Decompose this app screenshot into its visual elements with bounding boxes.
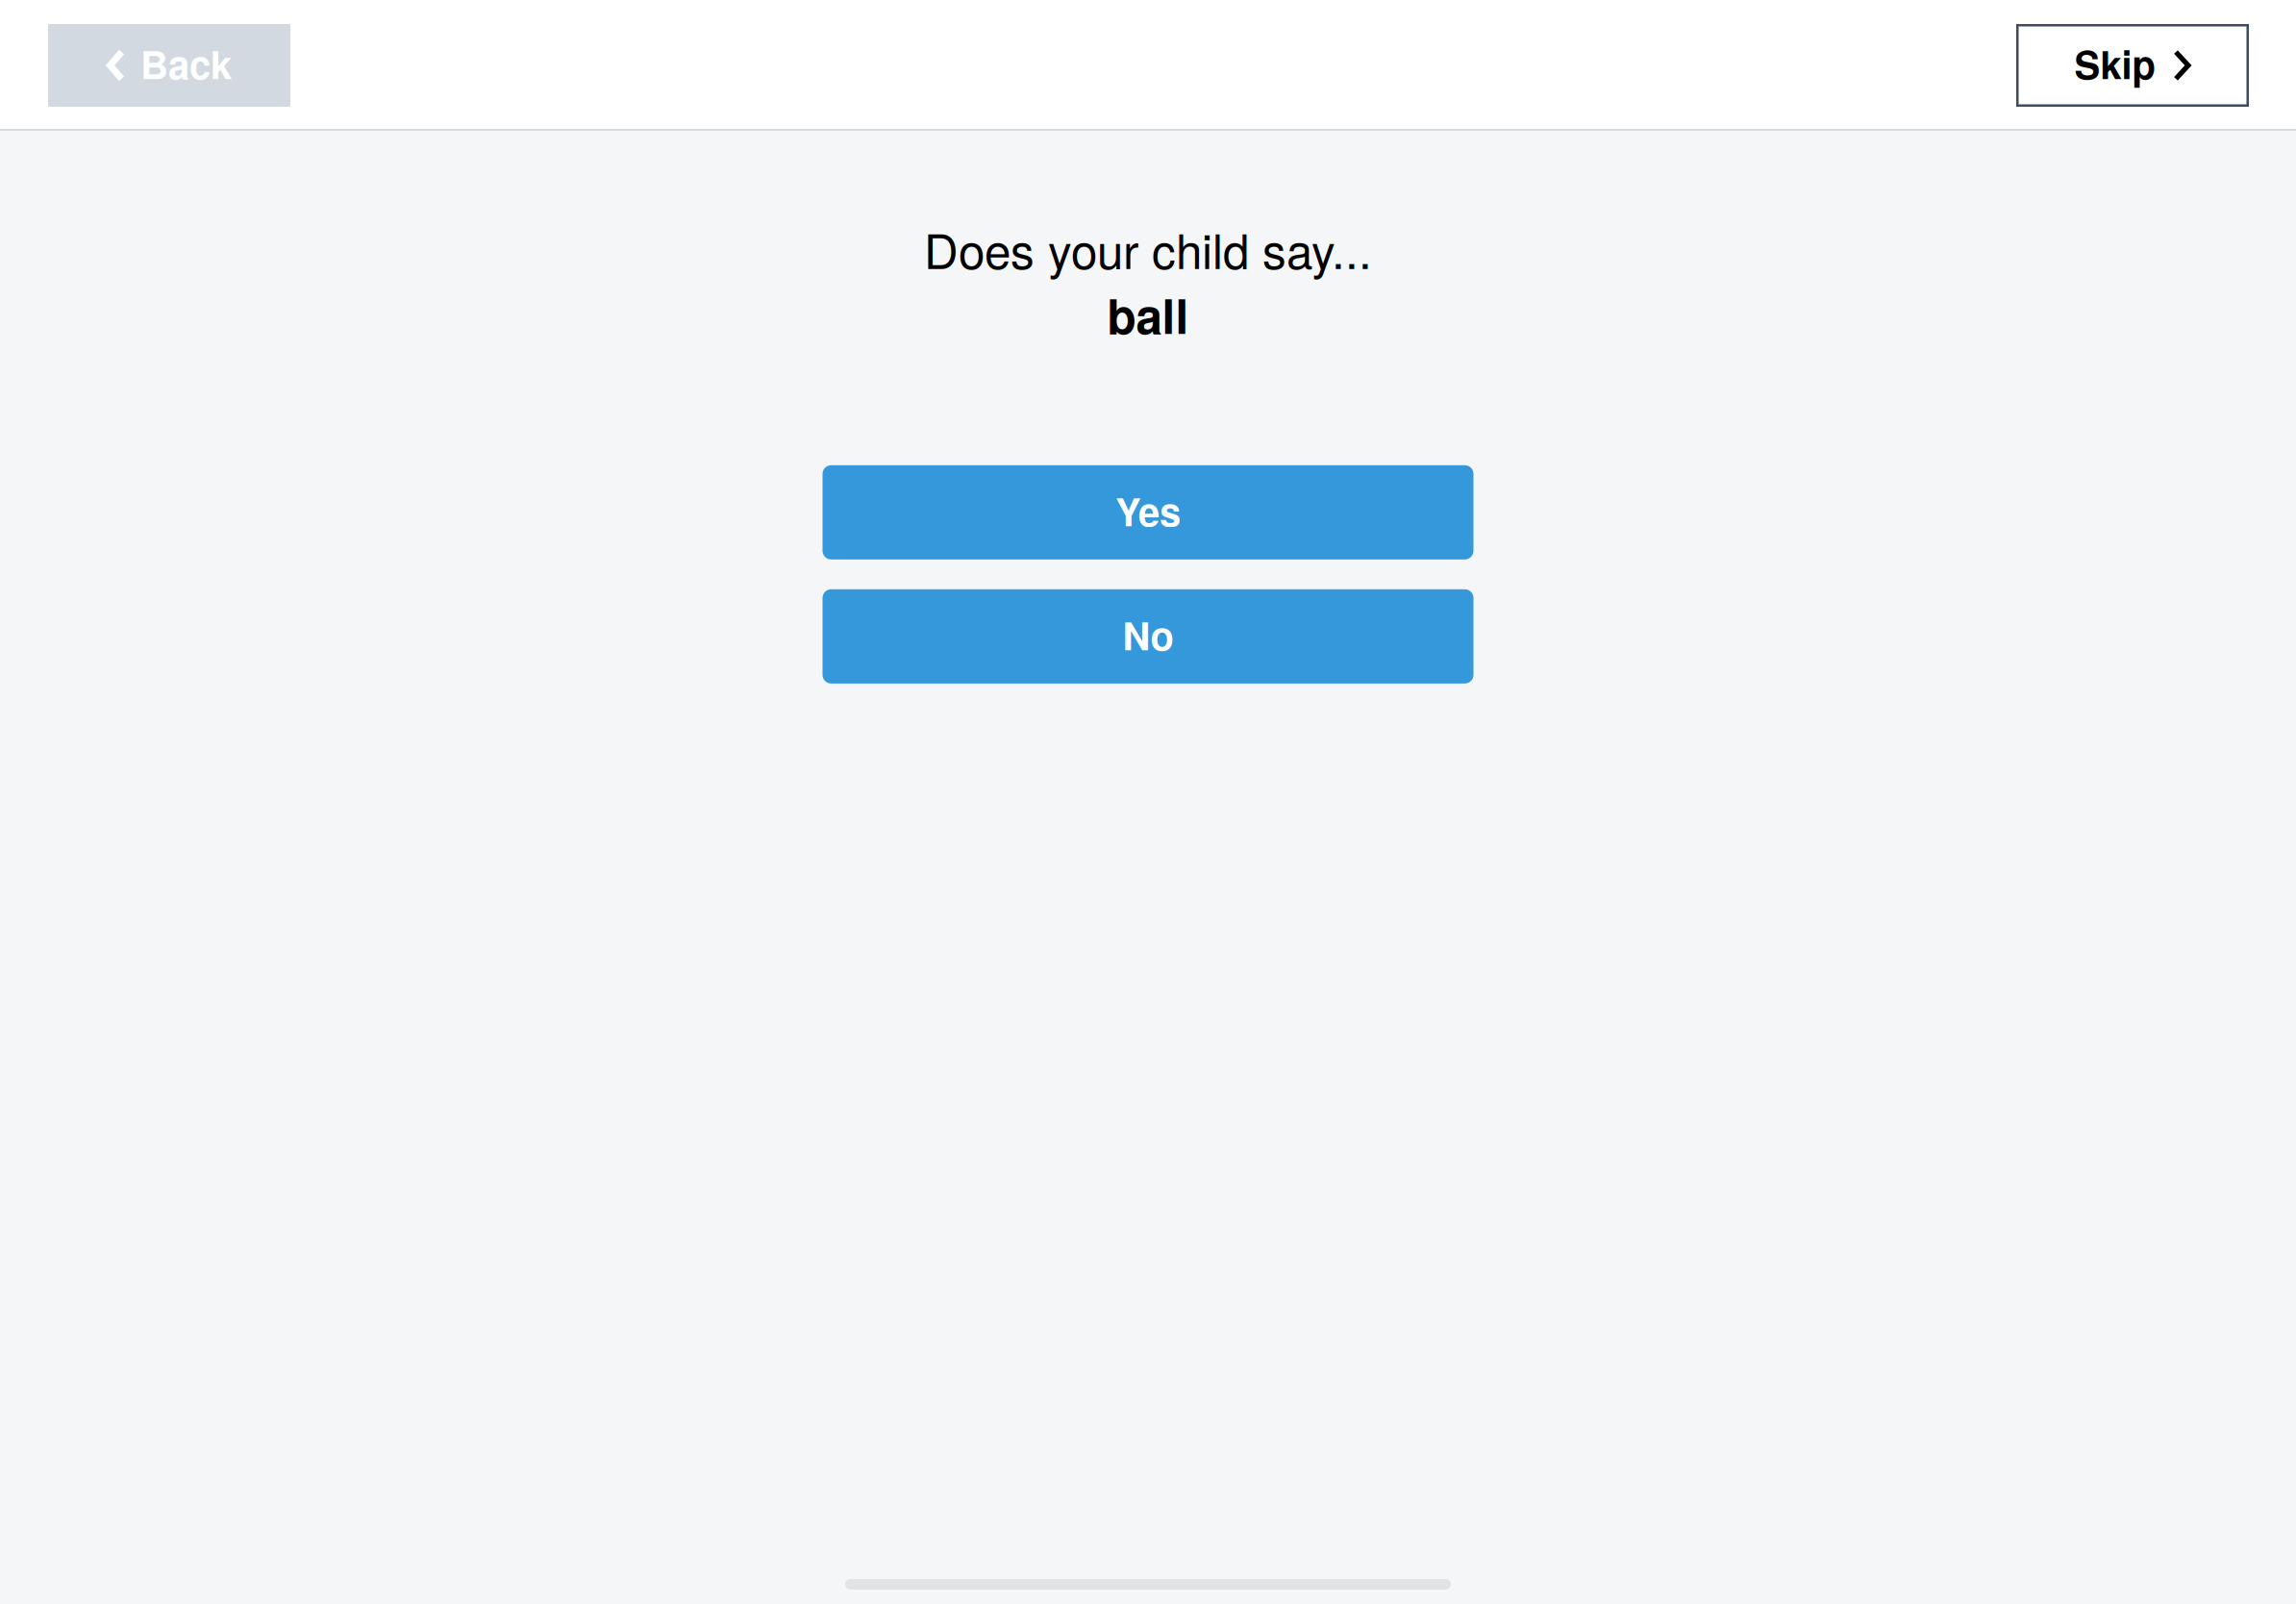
staticText: Yes [1115, 483, 1181, 538]
staticText: Skip [2074, 36, 2155, 91]
button[interactable]: No [823, 589, 1473, 684]
staticText: No [1123, 607, 1173, 662]
staticText: Back [140, 36, 232, 91]
button[interactable]: Back [48, 24, 290, 107]
staticText: ball [1107, 280, 1189, 348]
button[interactable]: Skip [2016, 24, 2249, 107]
staticText: Does your child say... [924, 214, 1372, 282]
button[interactable]: Yes [823, 465, 1473, 559]
